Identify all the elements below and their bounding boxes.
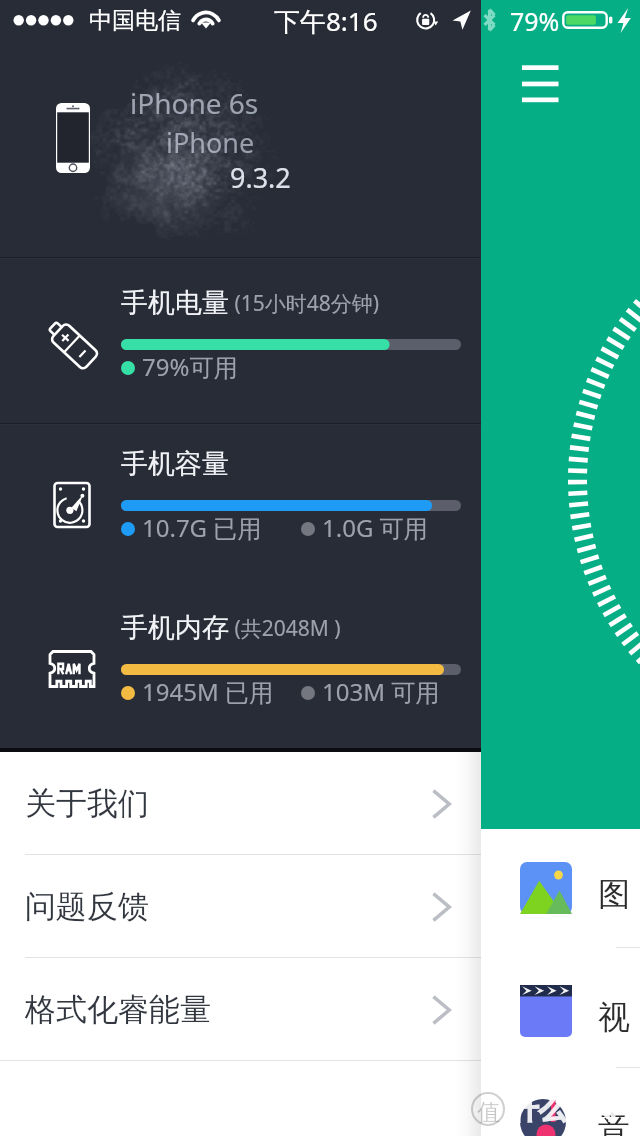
staticText: 1945M 已用 xyxy=(142,675,273,708)
staticText: iPhone xyxy=(166,124,255,161)
button[interactable]: 视 xyxy=(481,985,640,1095)
staticText: 10.7G 已用 xyxy=(142,511,262,544)
staticText: 手机电量 xyxy=(121,286,229,320)
staticText: 手机容量 xyxy=(121,447,229,481)
staticText: 关于我们 xyxy=(25,784,149,823)
staticText: 79%可用 xyxy=(142,350,238,383)
button[interactable]: 音 xyxy=(481,1096,640,1136)
staticText: (共2048M ) xyxy=(229,614,341,643)
staticText: 1.0G 可用 xyxy=(322,511,428,544)
staticText: 问题反馈 xyxy=(25,887,149,926)
staticText: 79% xyxy=(510,4,560,38)
staticText: 音 xyxy=(598,1108,630,1136)
staticText: iPhone 6s xyxy=(130,84,259,122)
button[interactable]: 问题反馈 xyxy=(0,855,640,958)
staticText: 下午8:16 xyxy=(274,3,378,39)
staticText: 103M 可用 xyxy=(322,675,440,708)
staticText: 9.3.2 xyxy=(230,159,291,196)
staticText: 中国电信 xyxy=(89,6,181,35)
staticText: 值 xyxy=(477,1098,500,1127)
button[interactable]: 关于我们 xyxy=(0,752,640,855)
button[interactable]: 格式化睿能量 xyxy=(0,958,640,1061)
staticText: 图 xyxy=(598,874,630,914)
staticText: 什么值得买 xyxy=(512,1092,640,1126)
button[interactable]: 图 xyxy=(481,862,640,972)
staticText: 格式化睿能量 xyxy=(25,990,211,1029)
button[interactable]: Menu xyxy=(515,56,563,104)
staticText: (15小时48分钟) xyxy=(229,289,380,318)
staticText: 视 xyxy=(598,997,630,1037)
staticText: 手机内存 xyxy=(121,611,229,645)
